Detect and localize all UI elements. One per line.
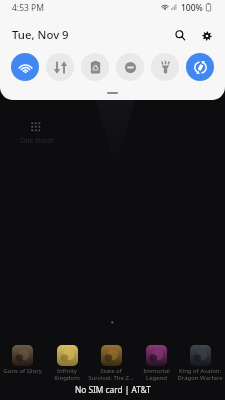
button[interactable]: State of Survival: The Z…	[88, 345, 134, 382]
button[interactable]: Auto rotate	[186, 53, 214, 81]
button[interactable]: Flashlight	[151, 53, 179, 81]
staticText: 100%	[181, 2, 203, 14]
button[interactable]: Settings	[195, 25, 216, 46]
button[interactable]: Battery saver	[81, 53, 109, 81]
staticText: Guns of Glory	[3, 367, 42, 375]
staticText: No SIM card | AT&T	[75, 384, 151, 395]
button[interactable]: Immortal Legend	[133, 345, 179, 382]
staticText: King of Avalon: Dragon Warfare	[177, 367, 223, 382]
staticText: Tue, Nov 9	[12, 27, 69, 43]
button[interactable]: Do not disturb	[116, 53, 144, 81]
staticText: One Shade	[14, 136, 60, 145]
staticText: Immortal Legend	[143, 367, 170, 382]
staticText: Infinity Kingdom	[54, 367, 80, 382]
staticText: State of Survival: The Z…	[88, 367, 134, 382]
staticText: 4:53 PM	[12, 2, 44, 14]
button[interactable]: Mobile data	[46, 53, 74, 81]
button[interactable]: Wi-Fi	[11, 53, 39, 81]
button[interactable]: One Shade	[14, 117, 60, 151]
button[interactable]: Infinity Kingdom	[44, 345, 90, 382]
button[interactable]: Search	[170, 25, 191, 46]
button[interactable]: Guns of Glory	[0, 345, 45, 375]
button[interactable]: King of Avalon: Dragon Warfare	[177, 345, 223, 382]
